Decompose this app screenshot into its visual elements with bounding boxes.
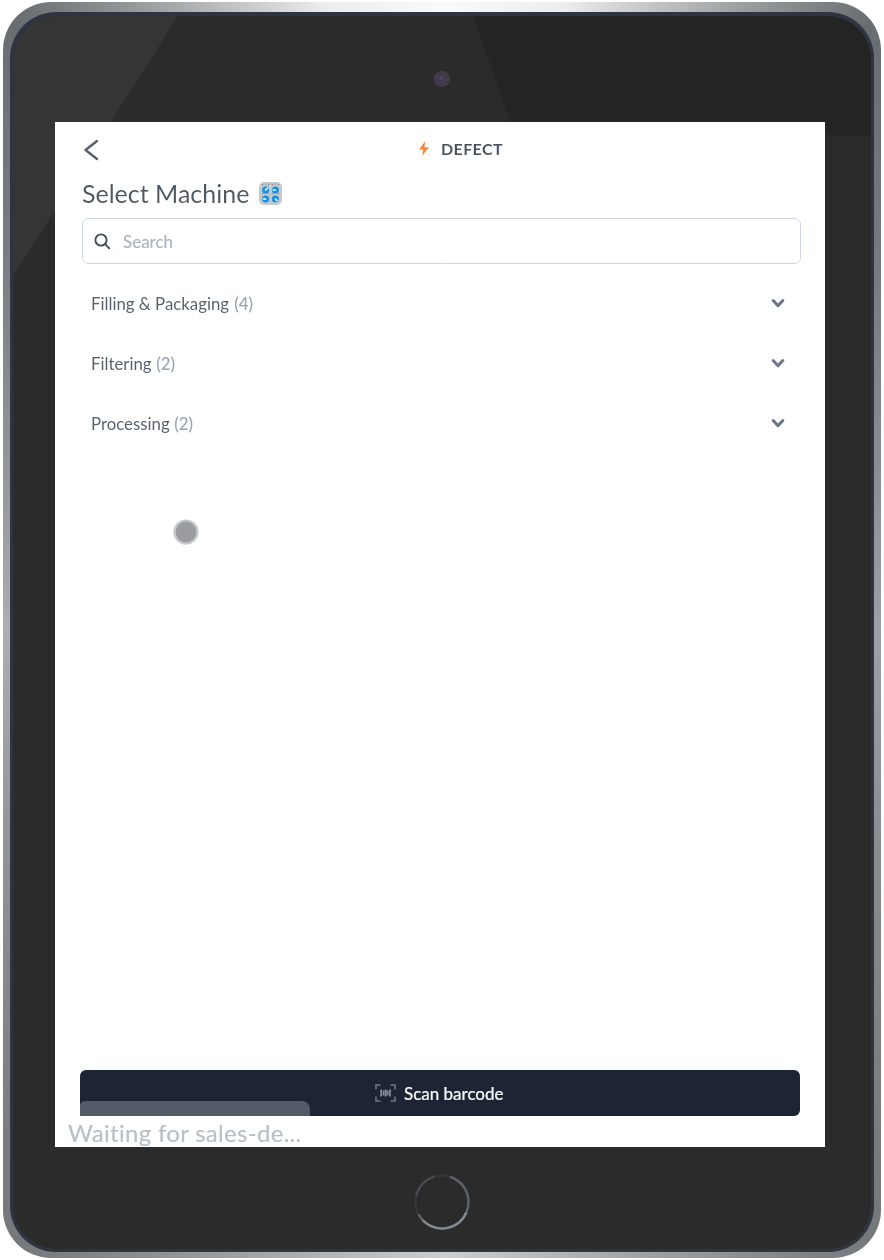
button[interactable]: Filling & Packaging — [82, 281, 801, 325]
button[interactable]: Filtering — [82, 341, 801, 385]
button[interactable]: Processing — [82, 401, 801, 445]
staticText: Scan barcode — [404, 1083, 504, 1103]
staticText: Filling & Packaging — [91, 293, 230, 313]
staticText: (4) — [230, 293, 254, 313]
button[interactable]: Search — [82, 218, 801, 264]
staticText: (2) — [152, 353, 176, 373]
staticText: Waiting for sales-de... — [68, 1118, 302, 1147]
staticText: (2) — [170, 413, 194, 433]
staticText: Processing — [91, 413, 170, 433]
button[interactable]: DEFECT — [419, 137, 503, 159]
staticText: Select Machine — [82, 178, 250, 208]
button[interactable]: Scan barcode — [80, 1070, 800, 1116]
staticText: Search — [123, 231, 174, 251]
button[interactable] — [73, 132, 109, 168]
staticText: DEFECT — [441, 139, 503, 158]
staticText: Filtering — [91, 353, 152, 373]
